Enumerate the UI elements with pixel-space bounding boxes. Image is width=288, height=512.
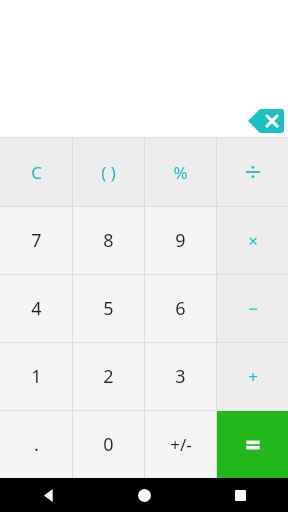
staticText: 0 xyxy=(103,432,114,457)
button[interactable]: Backspace xyxy=(248,109,284,133)
staticText: C xyxy=(31,161,42,184)
button[interactable]: Back xyxy=(0,478,96,512)
button[interactable]: + xyxy=(217,343,288,410)
button[interactable]: Recent apps xyxy=(192,478,288,512)
staticText: 6 xyxy=(175,296,186,321)
button[interactable]: % xyxy=(145,138,216,206)
button[interactable]: Home xyxy=(96,478,192,512)
button[interactable]: 4 xyxy=(0,275,72,342)
button[interactable]: × xyxy=(217,207,288,274)
button[interactable]: − xyxy=(217,275,288,342)
staticText: + xyxy=(248,365,258,388)
staticText: 8 xyxy=(103,228,114,253)
staticText: ( ) xyxy=(101,161,116,184)
staticText: 4 xyxy=(31,296,42,321)
staticText: . xyxy=(34,432,39,457)
staticText: 1 xyxy=(31,364,42,389)
button[interactable]: ( ) xyxy=(73,138,144,206)
button[interactable]: . xyxy=(0,411,72,478)
button[interactable]: 7 xyxy=(0,207,72,274)
button[interactable]: 0 xyxy=(73,411,144,478)
button[interactable]: C xyxy=(0,138,72,206)
button[interactable]: 9 xyxy=(145,207,216,274)
staticText: 5 xyxy=(103,296,114,321)
button[interactable]: 5 xyxy=(73,275,144,342)
staticText: × xyxy=(248,229,258,252)
staticText: 2 xyxy=(103,364,114,389)
button[interactable]: Equals xyxy=(217,411,288,478)
staticText: +/- xyxy=(170,433,192,456)
button[interactable]: 2 xyxy=(73,343,144,410)
button[interactable]: 6 xyxy=(145,275,216,342)
staticText: % xyxy=(173,161,188,184)
button[interactable]: +/- xyxy=(145,411,216,478)
button[interactable]: 1 xyxy=(0,343,72,410)
staticText: 3 xyxy=(175,364,186,389)
button[interactable]: 8 xyxy=(73,207,144,274)
staticText: 7 xyxy=(31,228,42,253)
staticText: 9 xyxy=(175,228,186,253)
button[interactable]: 3 xyxy=(145,343,216,410)
staticText: − xyxy=(248,297,258,320)
button[interactable]: Divide xyxy=(217,138,288,206)
